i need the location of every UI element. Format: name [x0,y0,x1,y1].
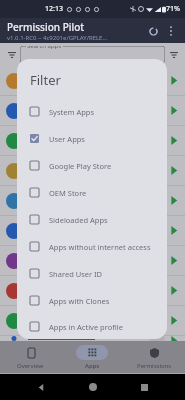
staticText: Overview [17,362,44,370]
button[interactable]: Apps in Active profile [17,314,167,339]
button[interactable]: Filter [165,46,182,63]
button[interactable]: Refresh [144,22,162,40]
staticText: Permissions [137,362,172,370]
button[interactable]: Home [83,377,103,397]
staticText: Sideloaded Apps [49,215,108,225]
staticText: Apps without internet access [49,242,151,252]
button[interactable]: Apps without internet access [17,233,167,260]
staticText: 71% [166,4,180,14]
button[interactable]: Permissions [123,341,185,374]
button[interactable]: Filter [3,46,20,63]
staticText: Apps in Active profile [49,322,123,332]
staticText: User Apps [49,134,85,144]
button[interactable]: Recents [134,377,154,397]
button[interactable]: User Apps [17,125,167,152]
staticText: OEM Store [49,188,87,198]
staticText: System Apps [49,107,95,117]
staticText: Shared User ID [49,269,103,279]
staticText: 12:13 [45,4,63,14]
button[interactable]: OEM Store [17,179,167,206]
staticText: Permission Pilot [7,20,85,34]
button[interactable]: More options [162,22,180,40]
staticText: v1.0.1-RC0 ~ 4c9201e/GPLAY/RELE… [7,34,108,42]
button[interactable]: Search apps [20,46,165,63]
staticText: Google Play Store [49,161,112,171]
button[interactable]: Google Play Store [17,152,167,179]
staticText: Apps [85,362,100,370]
button[interactable]: System Apps [17,98,167,125]
button[interactable]: Apps [61,341,123,374]
button[interactable]: Overview [0,341,61,374]
staticText: Filter [30,71,61,89]
button[interactable]: Sideloaded Apps [17,206,167,233]
button[interactable]: Back [31,377,51,397]
staticText: Search apps [27,46,62,50]
button[interactable]: Shared User ID [17,260,167,287]
staticText: Apps with Clones [49,296,110,306]
button[interactable]: Apps with Clones [17,287,167,314]
